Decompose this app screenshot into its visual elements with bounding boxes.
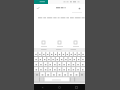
button[interactable] [46,62,50,67]
button[interactable]: Back [34,84,51,90]
button[interactable]: Attach file [37,41,50,47]
button[interactable] [39,72,44,77]
button[interactable] [80,57,85,62]
button[interactable] [55,57,60,62]
button[interactable] [73,72,79,77]
button[interactable] [42,52,46,57]
button[interactable]: Back [36,6,40,10]
button[interactable]: Home [51,84,68,90]
button[interactable]: Space [43,77,69,82]
button[interactable] [46,57,50,62]
button[interactable]: Period [69,77,74,82]
button[interactable] [80,52,85,57]
button[interactable]: More options [78,7,81,10]
button[interactable] [55,52,60,57]
button[interactable] [70,67,75,72]
button[interactable] [65,67,70,72]
button[interactable] [75,67,80,72]
button[interactable] [61,72,67,77]
button[interactable] [46,52,50,57]
button[interactable] [55,72,61,77]
button[interactable] [34,72,39,77]
button[interactable]: Enter [74,77,85,82]
button[interactable] [80,62,85,67]
button[interactable] [46,67,50,72]
button[interactable] [38,57,42,62]
button[interactable] [34,62,38,67]
button[interactable] [60,57,65,62]
button[interactable]: Emoji [38,77,43,82]
button[interactable] [70,62,75,67]
button[interactable] [60,52,65,57]
button[interactable] [50,52,55,57]
button[interactable]: Share location [69,41,82,47]
button[interactable] [50,57,55,62]
button[interactable] [55,67,60,72]
button[interactable] [65,62,70,67]
button[interactable] [75,62,80,67]
button[interactable] [44,72,49,77]
button[interactable] [34,67,38,72]
button[interactable] [34,52,38,57]
button[interactable] [34,57,38,62]
button[interactable] [75,57,80,62]
button[interactable] [80,67,85,72]
button[interactable] [65,52,70,57]
button[interactable]: Recents [68,84,85,90]
button[interactable] [75,52,80,57]
button[interactable] [42,57,46,62]
button[interactable] [65,57,70,62]
button[interactable] [42,62,46,67]
button[interactable] [38,67,42,72]
button[interactable] [70,52,75,57]
button[interactable] [42,67,46,72]
button[interactable] [38,62,42,67]
button[interactable] [70,57,75,62]
button[interactable] [50,62,55,67]
button[interactable] [67,72,73,77]
button[interactable] [38,52,42,57]
button[interactable]: Symbols [34,77,38,82]
button[interactable] [49,72,55,77]
button[interactable] [55,62,60,67]
button[interactable]: Take photo [53,41,66,47]
button[interactable] [60,67,65,72]
button[interactable] [50,67,55,72]
button[interactable] [79,72,85,77]
button[interactable] [60,62,65,67]
